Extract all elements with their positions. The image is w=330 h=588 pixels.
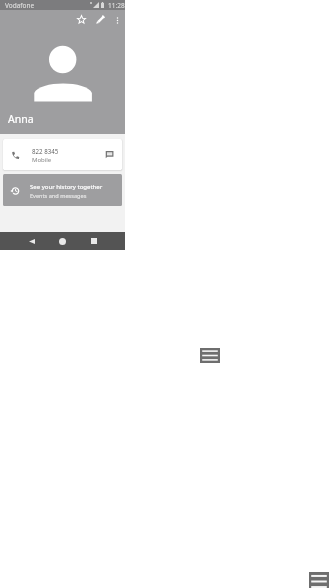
staticText: Anna (8, 112, 34, 126)
staticText: Mobile (32, 156, 52, 164)
staticText: Vodafone (5, 1, 35, 10)
button[interactable]: More options (107, 10, 127, 30)
button[interactable]: Back (22, 232, 42, 250)
button[interactable]: 822 8345 (3, 139, 122, 170)
button[interactable]: See your history together (3, 174, 122, 206)
button[interactable]: Send message (98, 139, 121, 170)
button[interactable]: Edit contact (90, 9, 110, 29)
staticText: Events and messages (30, 192, 87, 200)
button[interactable]: Add to favourites (71, 9, 91, 29)
staticText: See your history together (30, 183, 103, 191)
button[interactable]: Recent apps (84, 232, 104, 250)
button[interactable]: Home (52, 232, 72, 250)
staticText: 822 8345 (32, 147, 59, 155)
staticText: 11:28 (108, 1, 125, 10)
